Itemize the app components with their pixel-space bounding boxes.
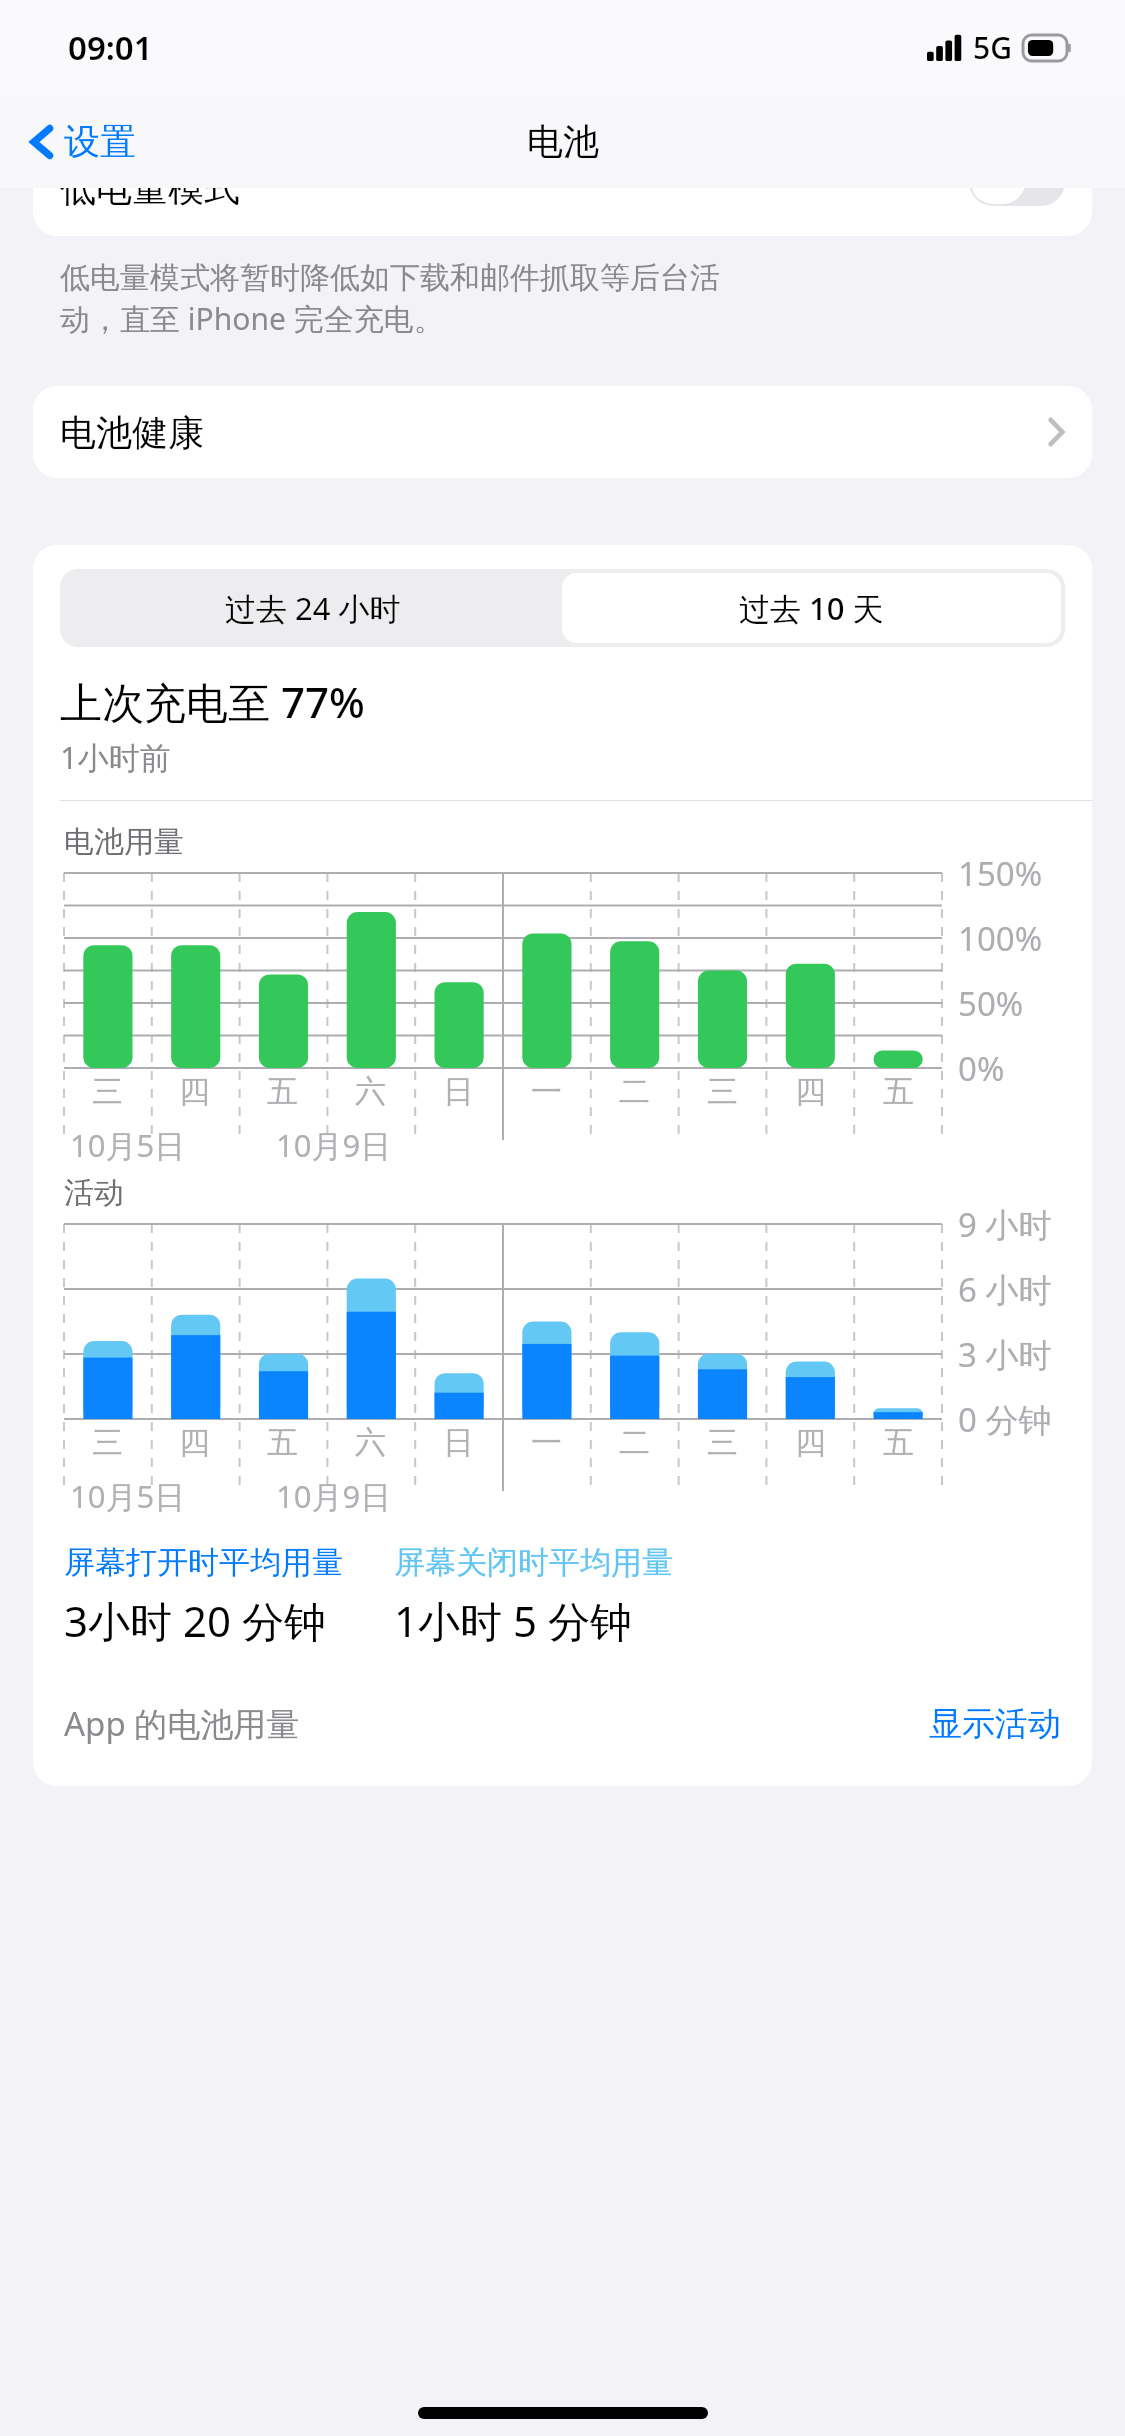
staticText: 五	[267, 1423, 298, 1462]
staticText: 屏幕关闭时平均用量	[394, 1543, 673, 1582]
staticText: 四	[795, 1072, 826, 1111]
staticText: 三	[92, 1423, 123, 1462]
staticText: 五	[883, 1072, 914, 1111]
staticText: 10月5日	[70, 1475, 186, 1517]
staticText: 三	[707, 1423, 738, 1462]
staticText: 电池	[527, 119, 599, 164]
staticText: 三	[707, 1072, 738, 1111]
staticText: 日	[443, 1423, 474, 1462]
staticText: 100%	[958, 916, 1043, 961]
staticText: 二	[619, 1423, 650, 1462]
staticText: 日	[443, 1072, 474, 1111]
staticText: 9 小时	[958, 1202, 1052, 1247]
staticText: 一	[531, 1423, 562, 1462]
staticText: 五	[267, 1072, 298, 1111]
button[interactable]: App 的电池用量	[33, 1701, 1092, 1746]
button[interactable]: 过去 10 天	[562, 573, 1061, 643]
staticText: 二	[619, 1072, 650, 1111]
staticText: 09:01	[68, 25, 153, 70]
staticText: 六	[355, 1072, 386, 1111]
staticText: 三	[92, 1072, 123, 1111]
staticText: 5G	[973, 27, 1012, 68]
staticText: 四	[795, 1423, 826, 1462]
staticText: 上次充电至 77%	[60, 673, 365, 730]
staticText: 3 小时	[958, 1332, 1052, 1377]
staticText: 显示活动	[929, 1703, 1061, 1745]
staticText: 0 分钟	[958, 1397, 1052, 1442]
staticText: 10月9日	[276, 1124, 392, 1166]
staticText: 10月5日	[70, 1124, 186, 1166]
staticText: 活动	[64, 1174, 124, 1212]
staticText: 六	[355, 1423, 386, 1462]
staticText: 设置	[64, 119, 136, 164]
button[interactable]: 设置	[22, 113, 144, 170]
staticText: 低电量模式将暂时降低如下载和邮件抓取等后台活 动，直至 iPhone 完全充电。	[60, 259, 720, 339]
button[interactable]: 低电量模式	[33, 188, 1092, 236]
staticText: 一	[531, 1072, 562, 1111]
staticText: 0%	[958, 1046, 1005, 1091]
staticText: 3小时 20 分钟	[64, 1592, 326, 1649]
staticText: 过去 10 天	[739, 587, 884, 629]
staticText: 四	[179, 1072, 210, 1111]
staticText: 10月9日	[276, 1475, 392, 1517]
staticText: 电池健康	[60, 410, 204, 455]
button[interactable]: 电池健康	[33, 386, 1092, 478]
staticText: 过去 24 小时	[225, 587, 401, 629]
staticText: 1小时 5 分钟	[394, 1592, 632, 1649]
staticText: 低电量模式	[60, 188, 240, 211]
staticText: App 的电池用量	[64, 1701, 300, 1746]
staticText: 电池用量	[64, 823, 184, 861]
staticText: 四	[179, 1423, 210, 1462]
staticText: 6 小时	[958, 1267, 1052, 1312]
staticText: 150%	[958, 851, 1043, 896]
staticText: 屏幕打开时平均用量	[64, 1543, 343, 1582]
staticText: 五	[883, 1423, 914, 1462]
button[interactable]: 过去 24 小时	[64, 573, 562, 643]
staticText: 1小时前	[60, 736, 171, 778]
staticText: 50%	[958, 981, 1024, 1026]
